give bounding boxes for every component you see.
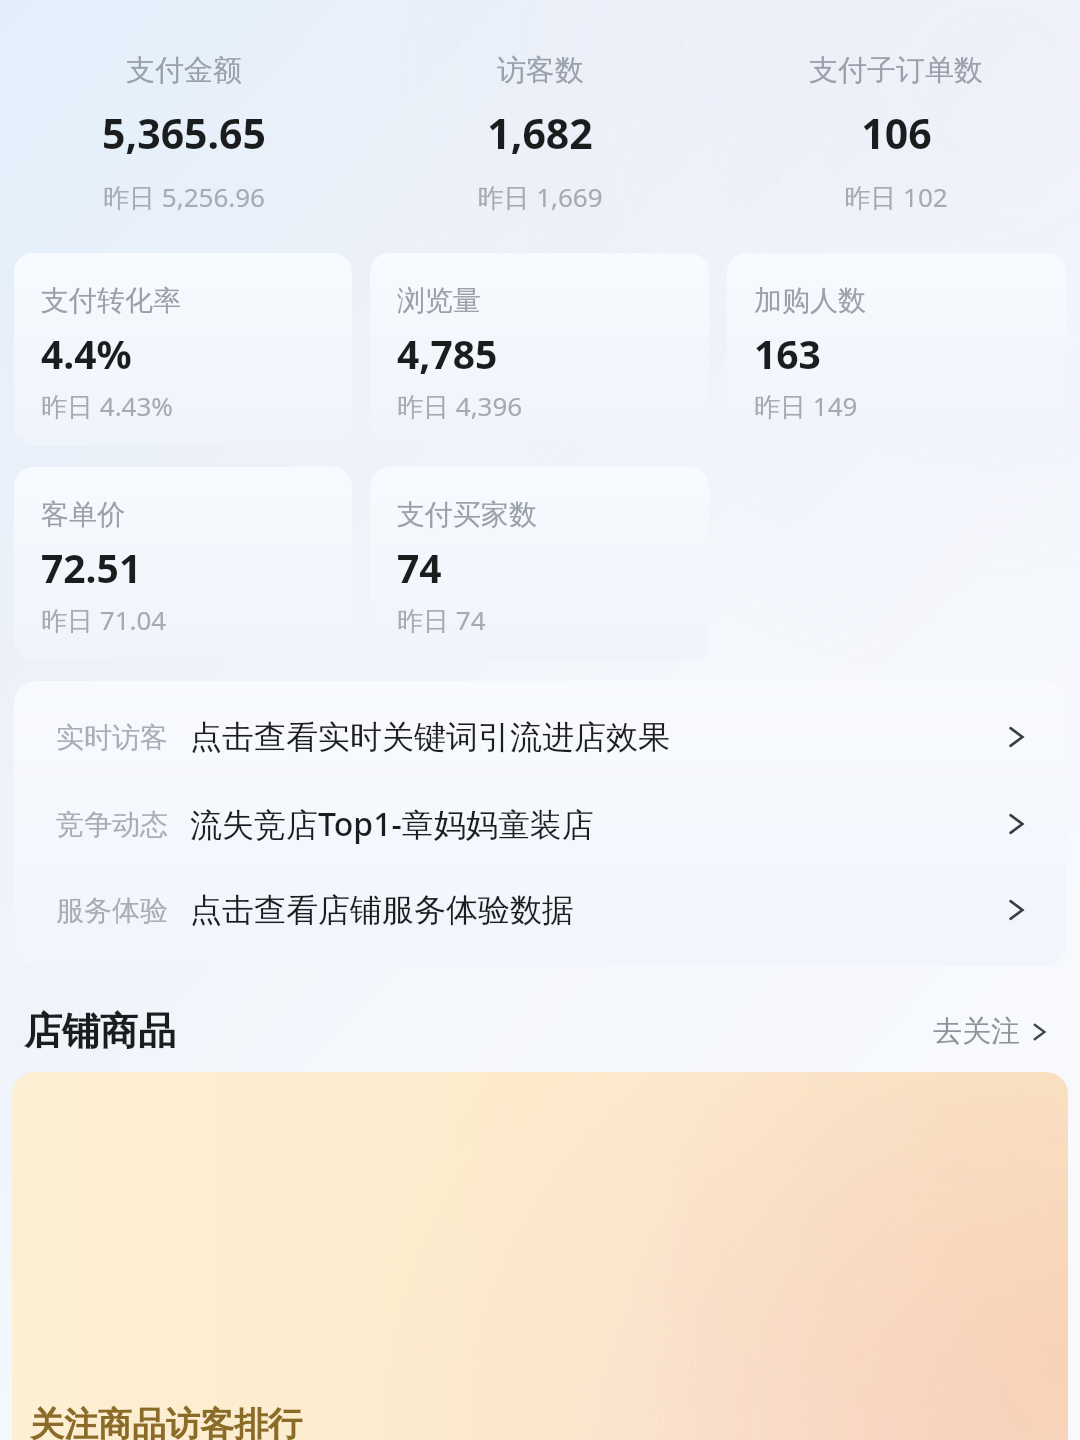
staticText: 4,785 <box>397 327 498 380</box>
button[interactable]: 支付买家数 <box>370 467 709 660</box>
staticText: 服务体验 <box>56 893 168 928</box>
staticText: 浏览量 <box>397 283 481 318</box>
staticText: 昨日 102 <box>844 179 948 215</box>
staticText: 竞争动态 <box>56 807 168 842</box>
button[interactable]: 浏览量 <box>370 253 709 446</box>
staticText: 昨日 1,669 <box>477 179 603 215</box>
staticText: 1,682 <box>487 105 593 161</box>
button[interactable]: 支付子订单数 <box>718 52 1074 215</box>
staticText: 点击查看实时关键词引流进店效果 <box>190 717 1000 757</box>
staticText: 74 <box>397 541 442 594</box>
staticText: 去关注 <box>933 1013 1020 1050</box>
button[interactable]: 加购人数 <box>727 253 1066 446</box>
staticText: 163 <box>754 327 821 380</box>
staticText: 106 <box>861 105 932 161</box>
button[interactable]: 关注商品访客排行 <box>12 1072 1068 1440</box>
staticText: 昨日 4,396 <box>397 388 523 424</box>
button[interactable]: 去关注 <box>927 1007 1060 1056</box>
button[interactable]: 实时访客 <box>14 694 1066 780</box>
button[interactable]: 服务体验 <box>14 867 1066 953</box>
staticText: 昨日 149 <box>754 388 858 424</box>
staticText: 72.51 <box>41 541 142 594</box>
staticText: 客单价 <box>41 497 125 532</box>
staticText: 流失竞店Top1-章妈妈童装店 <box>190 802 1000 846</box>
staticText: 关注商品访客排行 <box>30 1403 302 1440</box>
button[interactable]: 访客数 <box>362 52 718 215</box>
staticText: 支付子订单数 <box>809 52 983 89</box>
staticText: 访客数 <box>497 52 584 89</box>
staticText: 昨日 74 <box>397 602 486 638</box>
staticText: 店铺商品 <box>24 1007 176 1055</box>
staticText: 5,365.65 <box>102 105 266 161</box>
button[interactable]: 支付金额 <box>6 52 362 215</box>
staticText: 加购人数 <box>754 283 866 318</box>
button[interactable]: 竞争动态 <box>14 781 1066 867</box>
staticText: 4.4% <box>41 327 132 380</box>
staticText: 支付买家数 <box>397 497 537 532</box>
staticText: 昨日 5,256.96 <box>103 179 265 215</box>
staticText: 点击查看店铺服务体验数据 <box>190 890 1000 930</box>
button[interactable]: 客单价 <box>14 467 352 660</box>
staticText: 支付转化率 <box>41 283 181 318</box>
staticText: 昨日 4.43% <box>41 388 173 424</box>
staticText: 昨日 71.04 <box>41 602 167 638</box>
staticText: 支付金额 <box>126 52 242 89</box>
button[interactable]: 支付转化率 <box>14 253 352 446</box>
staticText: 实时访客 <box>56 720 168 755</box>
